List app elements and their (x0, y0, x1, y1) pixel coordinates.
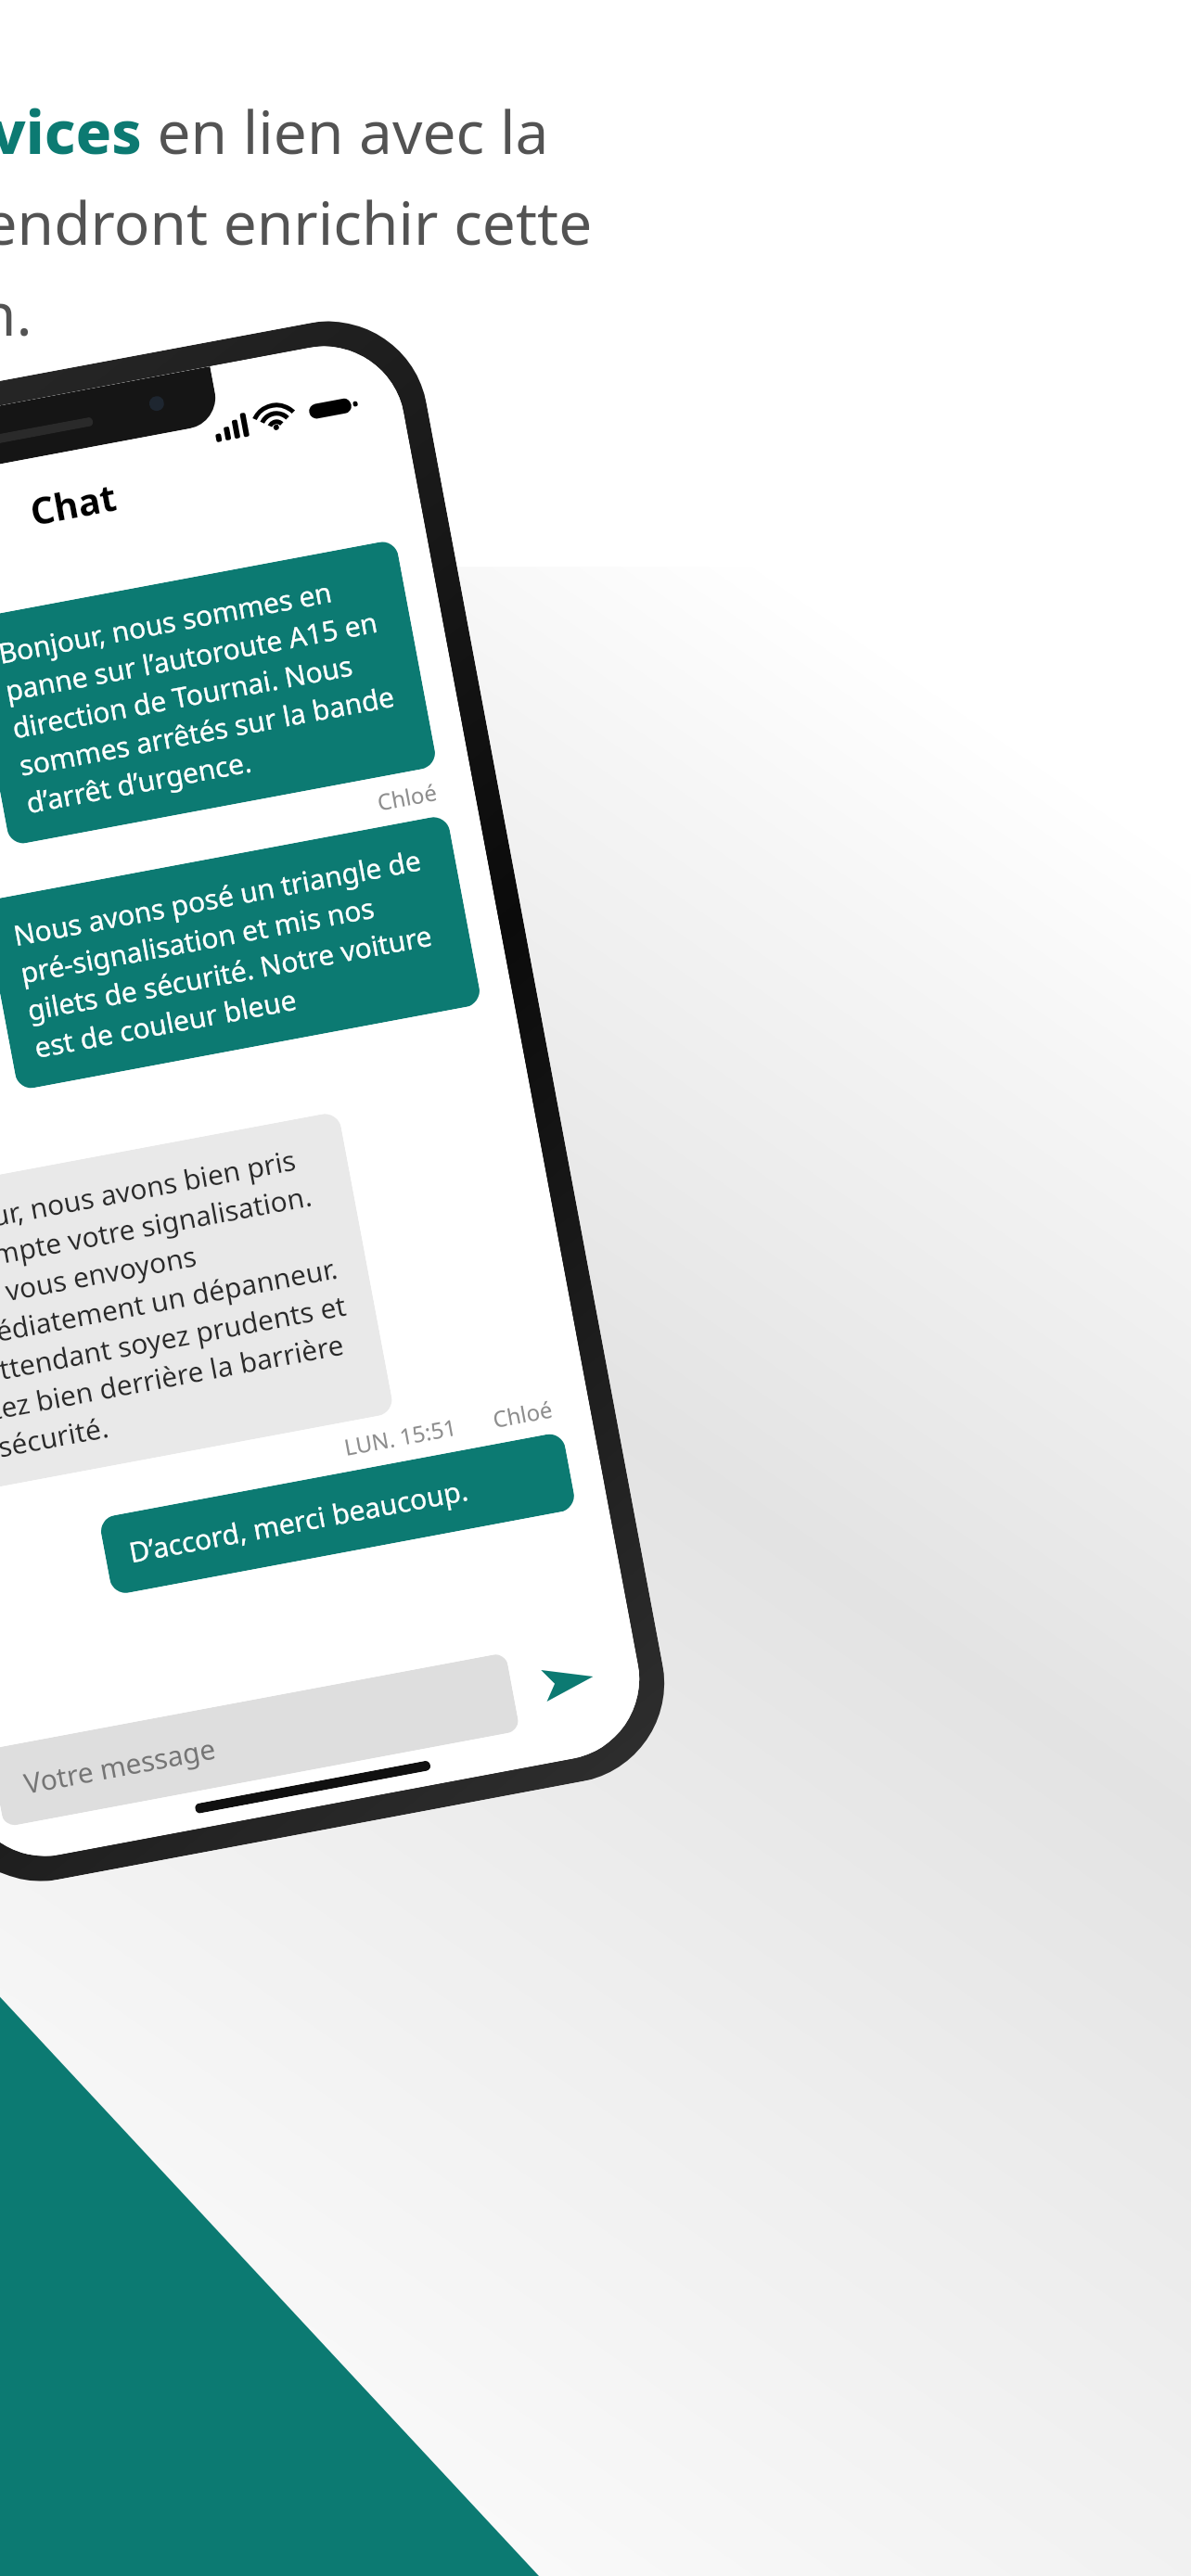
staticText: LUN. 15:51 (342, 1411, 459, 1462)
staticText: iendront enrichir cette (0, 182, 593, 262)
button[interactable]: Send (522, 1635, 615, 1728)
staticText: Votre message (21, 1729, 218, 1802)
button[interactable]: Bonjour, nous avons bien pris en compte … (0, 1111, 395, 1497)
button[interactable]: Bonjour, nous sommes en panne sur l’auto… (0, 539, 438, 846)
button[interactable]: D’accord, merci beaucoup. (98, 1431, 577, 1596)
staticText: Chloé (375, 776, 440, 817)
staticText: Bonjour, nous avons bien pris en compte … (0, 1136, 367, 1473)
staticText: Chat (26, 471, 120, 536)
staticText: Bonjour, nous sommes en panne sur l’auto… (0, 564, 410, 822)
staticText: Nous avons posé un triangle de pré-signa… (10, 839, 455, 1066)
button[interactable]: Nous avons posé un triangle de pré-signa… (0, 814, 482, 1091)
staticText: Chloé (490, 1393, 555, 1434)
button[interactable]: Votre message (0, 1652, 520, 1827)
staticText: D’accord, merci beaucoup. (126, 1471, 471, 1571)
staticText: n. (0, 273, 32, 353)
staticText: ervices en lien avec la (0, 91, 549, 172)
